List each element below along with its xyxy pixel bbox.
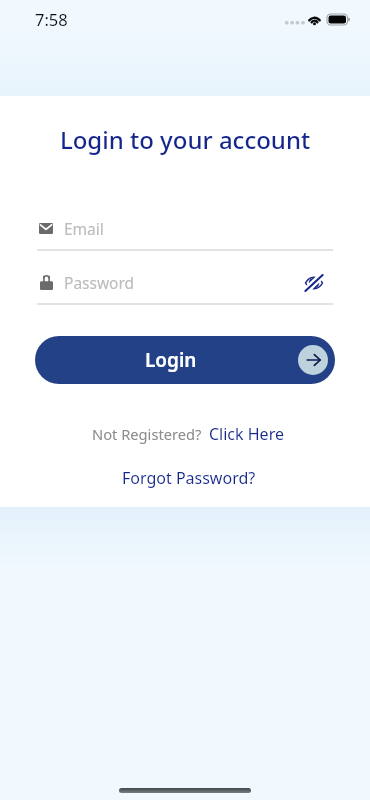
- staticText: 7:58: [35, 8, 68, 30]
- staticText: Email: [64, 218, 104, 239]
- staticText: Click Here: [209, 423, 284, 445]
- staticText: Login: [145, 347, 197, 373]
- button[interactable]: Toggle password visibility: [301, 272, 327, 294]
- button[interactable]: Not Registered?: [92, 423, 284, 445]
- staticText: Login to your account: [0, 123, 370, 156]
- staticText: Not Registered?: [92, 424, 202, 444]
- button[interactable]: Login: [35, 336, 335, 384]
- staticText: Password: [64, 272, 135, 293]
- staticText: Forgot Password?: [122, 467, 256, 489]
- button[interactable]: Forgot Password?: [122, 467, 256, 489]
